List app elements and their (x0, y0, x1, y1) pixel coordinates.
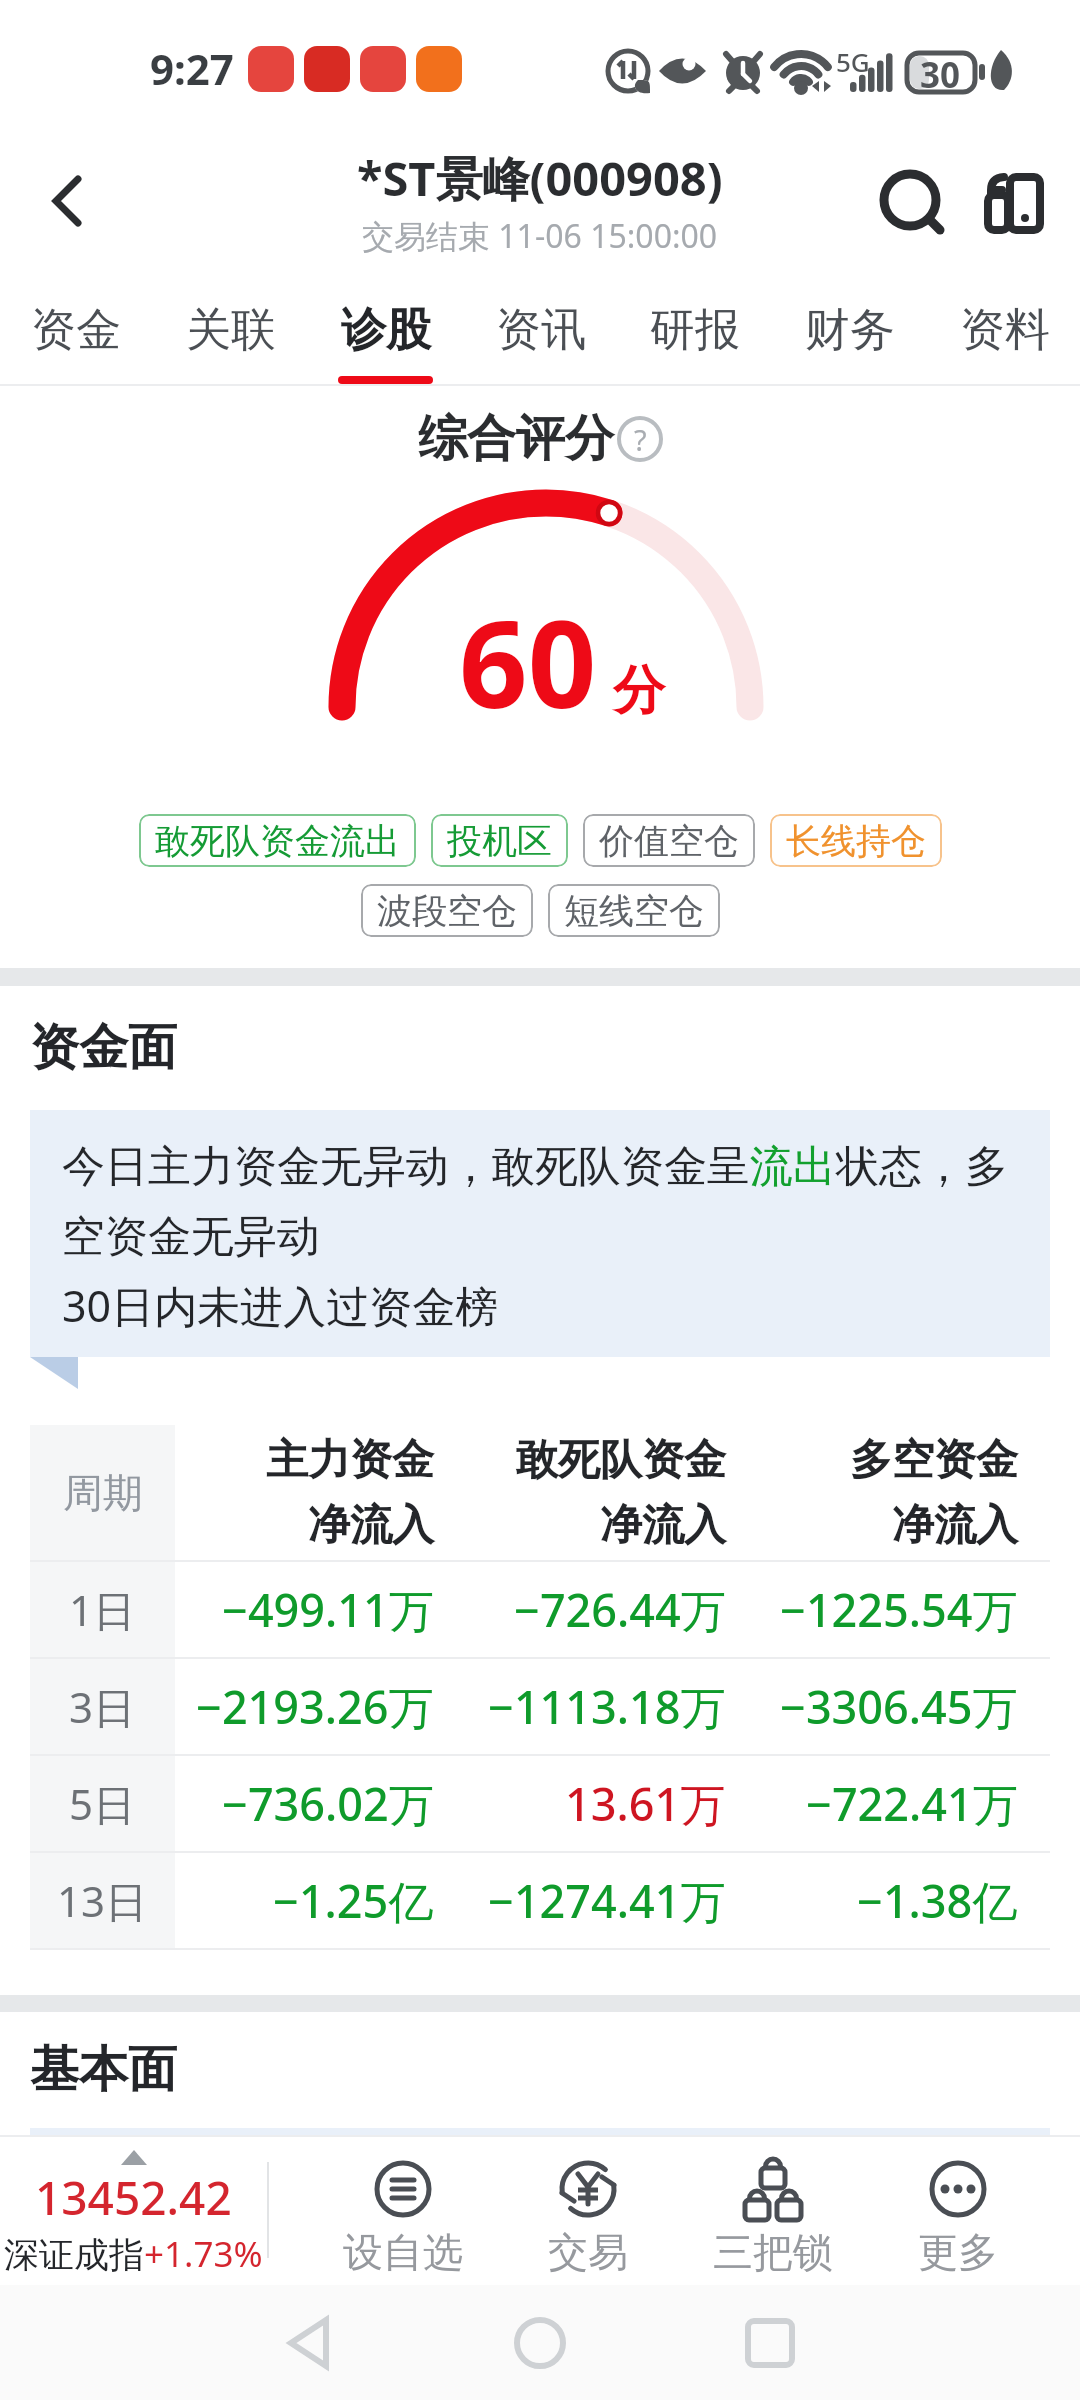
staticText: 关联 (186, 302, 276, 359)
button[interactable]: 研报 (631, 272, 758, 384)
button[interactable]: 5日 (30, 1756, 1050, 1851)
staticText: 投机区 (447, 819, 552, 863)
staticText: 60 (459, 580, 597, 743)
button[interactable]: 资讯 (477, 272, 604, 384)
button[interactable]: Layout (966, 152, 1062, 248)
staticText: 分 (613, 658, 665, 724)
staticText: 周期 (63, 1468, 143, 1518)
button[interactable]: 3日 (30, 1659, 1050, 1754)
staticText: 敢死队资金流出 (155, 819, 400, 863)
staticText: 交易 (548, 2227, 628, 2277)
button[interactable]: 短线空仓 (548, 884, 720, 937)
staticText: 5日 (69, 1775, 136, 1832)
button[interactable]: 财务 (786, 272, 913, 384)
staticText: −1.38亿 (857, 1870, 1018, 1931)
button[interactable]: 敢死队资金流出 (139, 814, 416, 867)
button[interactable]: 诊股 (322, 272, 449, 384)
staticText: 资金面 (30, 1017, 177, 1079)
staticText: −1.25亿 (273, 1870, 434, 1931)
staticText: 综合评分 (418, 408, 614, 470)
staticText: 5G (836, 44, 870, 79)
staticText: 资讯 (496, 302, 586, 359)
staticText: −1274.41万 (488, 1870, 726, 1931)
staticText: 3日 (69, 1678, 136, 1735)
button[interactable]: 1日 (30, 1562, 1050, 1657)
staticText: −499.11万 (222, 1579, 434, 1640)
staticText: 价值空仓 (599, 819, 739, 863)
button[interactable]: Search (862, 152, 958, 248)
staticText: −736.02万 (222, 1773, 434, 1834)
button[interactable]: 更多 (865, 2135, 1050, 2285)
staticText: 诊股 (341, 302, 431, 359)
button[interactable]: 13452.42 (0, 2135, 267, 2285)
staticText: 更多 (918, 2227, 998, 2277)
staticText: −726.44万 (514, 1579, 726, 1640)
button[interactable]: Help (618, 417, 662, 461)
button[interactable]: 三把锁 (680, 2135, 865, 2285)
staticText: 资金 (31, 302, 121, 359)
staticText: 9:27 (150, 40, 234, 97)
staticText: −3306.45万 (780, 1676, 1018, 1737)
staticText: ? (634, 420, 647, 459)
staticText: 13.61万 (565, 1773, 726, 1834)
staticText: 主力资金 净流入 (266, 1434, 434, 1551)
staticText: −722.41万 (806, 1773, 1018, 1834)
staticText: 敢死队资金 净流入 (516, 1434, 726, 1551)
button[interactable]: 资料 (941, 272, 1068, 384)
button[interactable]: 关联 (167, 272, 294, 384)
staticText: 短线空仓 (564, 889, 704, 933)
button[interactable]: 13日 (30, 1853, 1050, 1948)
button[interactable]: 设自选 (310, 2135, 495, 2285)
button[interactable]: 长线持仓 (770, 814, 942, 867)
staticText: 研报 (650, 302, 740, 359)
button[interactable]: 交易 (495, 2135, 680, 2285)
button[interactable]: Back (22, 156, 112, 246)
staticText: −1113.18万 (488, 1676, 726, 1737)
staticText: 今日主力资金无异动，敢死队资金呈流出状态，多空资金无异动 (62, 1140, 1018, 1264)
staticText: 三把锁 (713, 2227, 833, 2277)
staticText: *ST景峰(000908) (357, 146, 723, 210)
staticText: 设自选 (343, 2227, 463, 2277)
staticText: 基本面 (30, 2039, 177, 2101)
staticText: 30 (920, 51, 961, 99)
button[interactable]: 资金 (12, 272, 139, 384)
button[interactable]: Recents (725, 2298, 815, 2388)
staticText: 1日 (69, 1581, 136, 1638)
button[interactable]: Home (495, 2298, 585, 2388)
staticText: −1225.54万 (780, 1579, 1018, 1640)
staticText: −2193.26万 (196, 1676, 434, 1737)
button[interactable]: 价值空仓 (583, 814, 755, 867)
staticText: 深证成指+1.73% (4, 2230, 263, 2278)
staticText: 多空资金 净流入 (850, 1434, 1018, 1551)
staticText: 波段空仓 (377, 889, 517, 933)
staticText: 长线持仓 (786, 819, 926, 863)
staticText: 交易结束 11-06 15:00:00 (362, 214, 718, 258)
button[interactable]: Back (265, 2298, 355, 2388)
staticText: 30日内未进入过资金榜 (62, 1276, 499, 1335)
button[interactable]: 波段空仓 (361, 884, 533, 937)
staticText: 财务 (805, 302, 895, 359)
staticText: 资料 (960, 302, 1050, 359)
staticText: 13日 (57, 1872, 148, 1929)
staticText: 13452.42 (35, 2166, 232, 2229)
button[interactable]: 投机区 (431, 814, 568, 867)
